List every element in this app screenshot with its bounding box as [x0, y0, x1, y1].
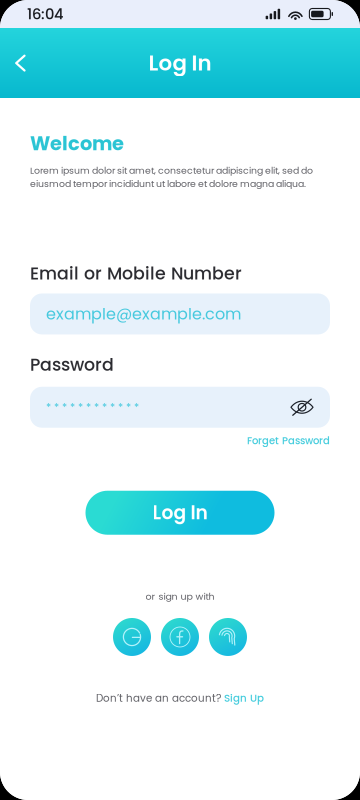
button[interactable]: Back	[0, 40, 41, 85]
button[interactable]: Sign up with fingerprint	[209, 618, 247, 656]
staticText: * * * * * * * * * * * *	[46, 400, 139, 415]
staticText: Lorem ipsum dolor sit amet, consectetur …	[30, 164, 313, 190]
staticText: Don’t have an account?	[96, 691, 221, 705]
button[interactable]: Show password	[290, 398, 314, 416]
staticText: or sign up with	[145, 590, 214, 603]
staticText: 16:04	[27, 4, 63, 24]
staticText: Log In	[152, 500, 207, 526]
staticText: example@example.com	[46, 303, 241, 325]
button[interactable]: Log In	[85, 491, 274, 535]
button[interactable]: Sign Up	[224, 691, 264, 705]
staticText: Forget Password	[247, 434, 330, 448]
staticText: Password	[30, 352, 114, 377]
staticText: Sign Up	[224, 691, 264, 705]
staticText: Log In	[148, 48, 211, 78]
button[interactable]: Sign up with Google	[113, 618, 151, 656]
staticText: Email or Mobile Number	[30, 261, 242, 285]
button[interactable]: Forget Password	[247, 434, 330, 448]
staticText: Welcome	[30, 130, 124, 157]
button[interactable]: Sign up with Facebook	[161, 618, 199, 656]
